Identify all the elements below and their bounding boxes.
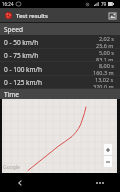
staticText: 2,02 s bbox=[99, 35, 114, 42]
staticText: 0 - 100 km/h bbox=[4, 65, 43, 74]
staticText: Speed bbox=[4, 25, 23, 34]
staticText: 13,02 s bbox=[95, 76, 114, 83]
staticText: 160,3 m bbox=[93, 69, 114, 76]
staticText: 5,00 s bbox=[99, 49, 114, 56]
staticText: 25,6 m bbox=[96, 42, 114, 49]
staticText: 320,0 m bbox=[93, 83, 114, 89]
button[interactable]: 0 - 75 km/h bbox=[0, 49, 120, 62]
button[interactable]: 0 - 100 km/h bbox=[0, 62, 120, 76]
button[interactable]: More options bbox=[80, 173, 120, 192]
staticText: 16:24 bbox=[2, 1, 14, 7]
staticText: 0 - 125 km/h bbox=[4, 78, 43, 87]
staticText: Test results bbox=[16, 12, 48, 20]
staticText: Google bbox=[3, 164, 20, 171]
button[interactable]: Zoom out bbox=[104, 156, 112, 167]
staticText: 79 bbox=[101, 1, 107, 7]
button[interactable]: 0 - 50 km/h bbox=[0, 35, 120, 49]
staticText: 8,00 s bbox=[99, 62, 114, 69]
button[interactable]: Back bbox=[0, 173, 40, 192]
staticText: 83,1 m bbox=[96, 56, 114, 62]
button[interactable]: Zoom in bbox=[104, 144, 112, 155]
staticText: 0 - 75 km/h bbox=[4, 51, 39, 60]
staticText: Time bbox=[4, 90, 20, 99]
button[interactable]: 0 - 125 km/h bbox=[0, 76, 120, 89]
button[interactable]: Show chart bbox=[107, 11, 117, 20]
staticText: 0 - 50 km/h bbox=[4, 38, 39, 47]
